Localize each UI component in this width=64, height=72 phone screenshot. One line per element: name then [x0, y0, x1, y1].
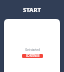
button[interactable]: CONTINUE — [22, 54, 43, 58]
staticText: Get started — [25, 48, 40, 52]
staticText: START — [23, 6, 41, 14]
staticText: CONTINUE — [26, 54, 40, 58]
